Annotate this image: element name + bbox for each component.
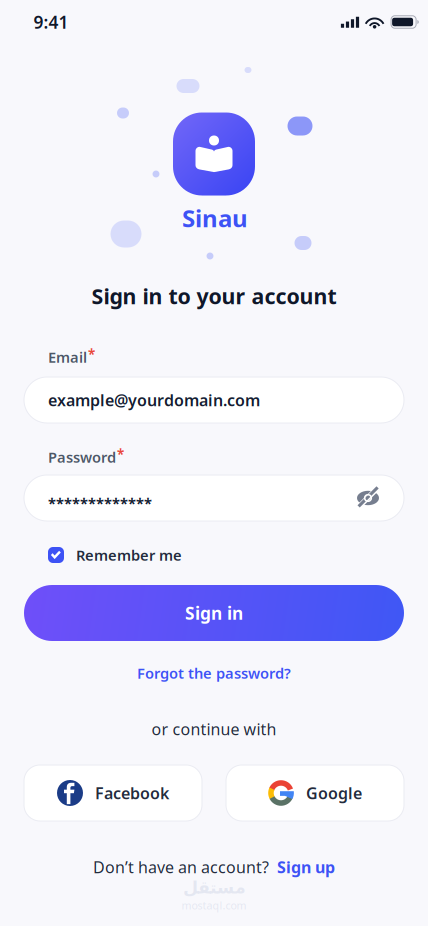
staticText: * bbox=[88, 345, 95, 363]
staticText: مستقل bbox=[182, 878, 245, 897]
staticText: * bbox=[117, 445, 124, 463]
staticText: Sign up bbox=[277, 856, 335, 878]
staticText: mostaql.com bbox=[181, 898, 246, 912]
staticText: Sinau bbox=[182, 202, 248, 234]
staticText: Remember me bbox=[76, 545, 182, 565]
staticText: Password bbox=[48, 447, 116, 467]
staticText: 9:41 bbox=[33, 10, 68, 33]
staticText: Facebook bbox=[95, 782, 169, 804]
staticText: Don’t have an account? bbox=[93, 856, 269, 878]
staticText: or continue with bbox=[151, 718, 276, 740]
staticText: Google bbox=[306, 782, 362, 804]
button[interactable]: Forgot the password? bbox=[137, 660, 291, 686]
staticText: example@yourdomain.com bbox=[48, 389, 260, 411]
staticText: ************* bbox=[48, 493, 152, 513]
button[interactable]: Sign up bbox=[277, 856, 335, 878]
staticText: Email bbox=[48, 347, 87, 367]
button[interactable]: Facebook bbox=[24, 765, 202, 821]
staticText: Sign in to your account bbox=[91, 282, 336, 310]
staticText: Forgot the password? bbox=[137, 663, 291, 683]
button[interactable]: Show password bbox=[356, 486, 380, 510]
button[interactable]: Remember me bbox=[48, 542, 380, 568]
button[interactable]: Sign in bbox=[24, 585, 404, 641]
staticText: Sign in bbox=[185, 601, 243, 624]
button[interactable]: Google bbox=[226, 765, 404, 821]
